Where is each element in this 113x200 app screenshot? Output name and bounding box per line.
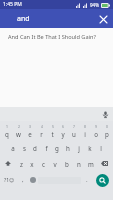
staticText: 9 <box>95 124 97 129</box>
staticText: x <box>30 160 34 168</box>
staticText: z <box>20 160 23 168</box>
button[interactable]: 2 <box>13 122 24 139</box>
staticText: 2 <box>18 124 20 129</box>
button[interactable]: a <box>8 140 18 155</box>
button[interactable]: d <box>30 140 40 155</box>
button[interactable]: c <box>38 156 48 171</box>
staticText: f <box>45 144 48 152</box>
button[interactable]: Shift <box>1 156 15 171</box>
staticText: 3 <box>29 124 31 129</box>
staticText: 1:45 PM <box>3 1 22 8</box>
button[interactable]: g <box>52 140 62 155</box>
staticText: k <box>88 144 92 152</box>
staticText: c <box>42 160 45 168</box>
button[interactable]: m <box>85 156 96 171</box>
button[interactable]: 3 <box>25 122 35 139</box>
staticText: m <box>88 160 94 168</box>
button[interactable]: Voice input <box>100 109 110 119</box>
staticText: j <box>78 144 80 152</box>
button[interactable]: x <box>27 156 37 171</box>
button[interactable]: 8 <box>80 122 90 139</box>
button[interactable]: 1 <box>1 122 12 139</box>
staticText: And Can It Be That I Should Gain? <box>8 33 96 41</box>
staticText: v <box>53 160 57 168</box>
staticText: 6 <box>62 124 64 129</box>
button[interactable]: l <box>96 140 106 155</box>
button[interactable]: f <box>41 140 51 155</box>
staticText: b <box>65 160 69 168</box>
button[interactable]: 0 <box>102 122 112 139</box>
staticText: l <box>100 144 102 152</box>
button[interactable]: Emoji <box>28 172 37 188</box>
staticText: 1 <box>6 124 8 129</box>
staticText: , <box>22 176 24 184</box>
staticText: u <box>72 130 76 138</box>
button[interactable]: . <box>82 172 91 188</box>
staticText: t <box>51 130 54 138</box>
button[interactable]: ?1☺ <box>1 172 17 188</box>
staticText: o <box>94 130 98 138</box>
staticText: q <box>5 130 9 138</box>
staticText: 4 <box>41 124 43 129</box>
staticText: 7 <box>73 124 75 129</box>
button[interactable]: z <box>16 156 26 171</box>
staticText: d <box>33 144 37 152</box>
staticText: i <box>84 130 86 138</box>
button[interactable]: 7 <box>69 122 79 139</box>
button[interactable]: 6 <box>58 122 68 139</box>
button[interactable]: j <box>74 140 84 155</box>
staticText: e <box>28 130 32 138</box>
staticText: . <box>86 176 88 184</box>
button[interactable]: And Can It Be That I Should Gain? <box>0 28 113 45</box>
staticText: y <box>61 130 65 138</box>
button[interactable]: b <box>61 156 72 171</box>
staticText: 0 <box>106 124 108 129</box>
button[interactable]: h <box>63 140 73 155</box>
staticText: w <box>16 130 21 138</box>
button[interactable]: 9 <box>91 122 101 139</box>
staticText: p <box>105 130 109 138</box>
staticText: h <box>66 144 70 152</box>
staticText: s <box>23 144 26 152</box>
staticText: r <box>40 130 43 138</box>
button[interactable]: , <box>18 172 27 188</box>
staticText: a <box>11 144 15 152</box>
button[interactable]: k <box>85 140 95 155</box>
staticText: g <box>55 144 59 152</box>
staticText: ?1☺ <box>4 177 15 184</box>
button[interactable]: 4 <box>36 122 46 139</box>
button[interactable]: s <box>19 140 29 155</box>
staticText: 8 <box>84 124 86 129</box>
button[interactable]: n <box>73 156 84 171</box>
staticText: and <box>17 14 30 24</box>
button[interactable]: Clear search <box>96 12 110 26</box>
button[interactable]: v <box>49 156 60 171</box>
staticText: n <box>77 160 81 168</box>
button[interactable]: Search <box>96 174 109 187</box>
staticText: 94% <box>90 2 99 8</box>
button[interactable]: Backspace <box>97 156 112 171</box>
button[interactable]: 5 <box>47 122 57 139</box>
staticText: 5 <box>52 124 54 129</box>
